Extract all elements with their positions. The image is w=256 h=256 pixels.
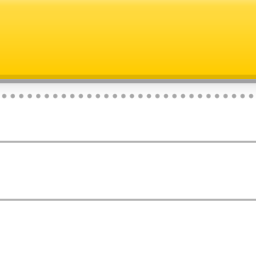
button[interactable]: Note title — [0, 0, 256, 75]
button[interactable]: Note body — [0, 83, 256, 256]
